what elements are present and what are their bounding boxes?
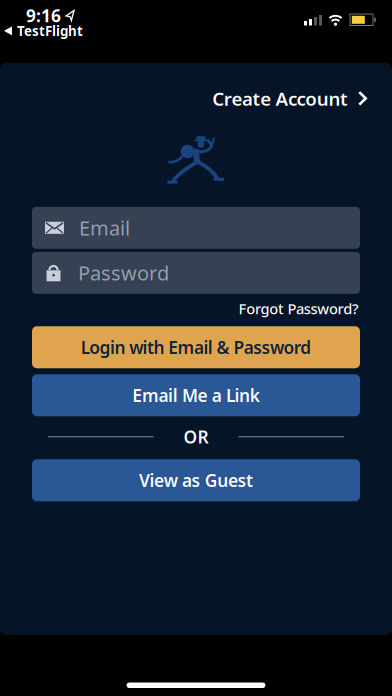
staticText: TestFlight [17, 22, 83, 40]
button[interactable]: Login with Email & Password [32, 326, 360, 368]
staticText: Email [79, 214, 130, 241]
staticText: Password [78, 259, 169, 286]
staticText: View as Guest [139, 469, 253, 492]
button[interactable]: Forgot Password? [238, 299, 359, 318]
button[interactable]: Password [32, 252, 360, 294]
button[interactable]: Email Me a Link [32, 374, 360, 416]
button[interactable]: TestFlight [0, 22, 83, 40]
staticText: Forgot Password? [238, 299, 359, 318]
staticText: Login with Email & Password [81, 336, 311, 359]
button[interactable]: Email [32, 207, 360, 249]
staticText: 9:16 [26, 4, 61, 27]
staticText: Email Me a Link [132, 384, 260, 407]
staticText: OR [183, 425, 208, 448]
button[interactable]: View as Guest [32, 459, 360, 501]
staticText: Create Account [212, 86, 348, 111]
button[interactable]: Create Account [212, 86, 367, 111]
